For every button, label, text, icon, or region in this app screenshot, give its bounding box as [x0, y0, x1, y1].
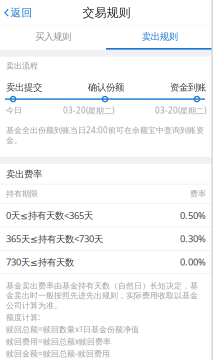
staticText: 赎回费用=赎回总额x赎回费率 [6, 336, 111, 347]
staticText: 基金全出份额到账当日24:00前可在余额宝中查询到账资金。 [6, 125, 204, 145]
staticText: 365天≤持有天数<730天 [6, 232, 103, 245]
staticText: 730天≤持有天数 [6, 256, 74, 268]
staticText: 0.30% [180, 232, 206, 245]
staticText: 持有期限 [6, 189, 38, 199]
staticText: 赎回总额=赎回数量xT日基金份额净值 [6, 324, 139, 335]
staticText: 返回 [10, 6, 32, 19]
button[interactable]: 买入规则 [0, 25, 106, 48]
staticText: 买入规则 [35, 31, 71, 42]
staticText: 0天≤持有天数<365天 [6, 209, 93, 222]
staticText: 交易规则 [82, 5, 130, 20]
staticText: 额度计算: [6, 312, 40, 322]
button[interactable]: 返回 [0, 0, 38, 25]
staticText: 确认份额 [88, 82, 124, 93]
staticText: 赎回金额=赎回总额-赎回费用 [6, 348, 110, 359]
staticText: 资金到账 [170, 82, 206, 93]
button[interactable]: 卖出规则 [106, 25, 213, 48]
staticText: 费率 [190, 189, 206, 199]
staticText: 卖出费率 [6, 168, 42, 180]
staticText: 卖出提交 [6, 82, 42, 93]
staticText: 今日 [6, 105, 22, 115]
staticText: 基金卖出费率由基金持有天数（自然日）长短决定，基金卖出时一般按照先进先出规则，实… [6, 281, 198, 310]
staticText: 0.50% [180, 209, 206, 222]
staticText: 0.00% [180, 256, 206, 268]
staticText: 卖出规则 [142, 31, 178, 42]
staticText: 03-20(星期二) [63, 105, 114, 116]
staticText: 03-20(星期二) [155, 105, 206, 116]
staticText: 卖出流程 [6, 61, 38, 71]
